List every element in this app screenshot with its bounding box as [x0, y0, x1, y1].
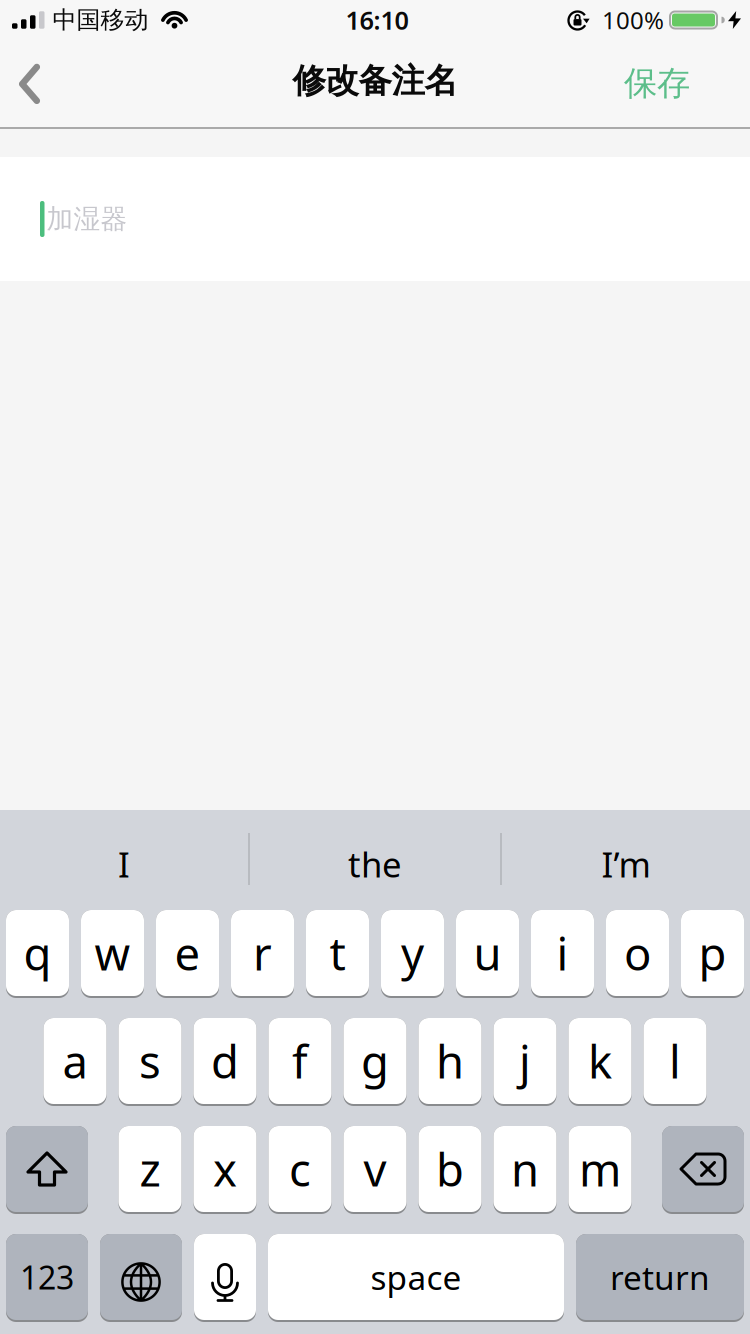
button[interactable]	[100, 1234, 182, 1322]
staticText: g	[361, 1031, 389, 1091]
button[interactable]: y	[381, 910, 444, 998]
staticText: v	[363, 1139, 386, 1199]
button[interactable]: l	[643, 1018, 706, 1106]
button[interactable]: z	[118, 1126, 181, 1214]
button[interactable]: the	[250, 810, 500, 908]
button[interactable]: 加湿器	[0, 157, 750, 281]
button[interactable]: n	[493, 1126, 556, 1214]
staticText: k	[588, 1031, 612, 1091]
staticText: u	[473, 923, 501, 983]
button[interactable]: return	[576, 1234, 744, 1322]
staticText: e	[174, 923, 200, 983]
button[interactable]	[6, 1126, 88, 1214]
button[interactable]: k	[568, 1018, 631, 1106]
staticText: j	[519, 1031, 531, 1091]
button[interactable]: space	[268, 1234, 564, 1322]
button[interactable]: c	[268, 1126, 331, 1214]
staticText: the	[348, 841, 402, 887]
staticText: 123	[20, 1256, 74, 1298]
staticText: t	[329, 923, 345, 983]
button[interactable]: h	[418, 1018, 481, 1106]
staticText: I’m	[601, 841, 650, 887]
button[interactable]: o	[606, 910, 669, 998]
staticText: z	[139, 1139, 160, 1199]
staticText: s	[139, 1031, 161, 1091]
staticText: f	[292, 1031, 308, 1091]
button[interactable]: i	[531, 910, 594, 998]
button[interactable]: u	[456, 910, 519, 998]
button[interactable]: x	[193, 1126, 256, 1214]
staticText: r	[253, 923, 272, 983]
button[interactable]: w	[81, 910, 144, 998]
staticText: l	[669, 1031, 681, 1091]
staticText: x	[213, 1139, 237, 1199]
button[interactable]: q	[6, 910, 69, 998]
staticText: 16:10	[345, 3, 408, 37]
staticText: 加湿器	[46, 203, 127, 235]
button[interactable]	[194, 1234, 256, 1322]
button[interactable]: I’m	[502, 810, 750, 908]
button[interactable]: b	[418, 1126, 481, 1214]
staticText: h	[436, 1031, 464, 1091]
button[interactable]: v	[343, 1126, 406, 1214]
button[interactable]	[662, 1126, 744, 1214]
staticText: 中国移动	[52, 5, 148, 35]
staticText: q	[23, 923, 51, 983]
button[interactable]: 保存	[624, 63, 750, 104]
button[interactable]: a	[43, 1018, 106, 1106]
button[interactable]	[0, 53, 52, 113]
staticText: i	[556, 923, 568, 983]
staticText: a	[62, 1031, 87, 1091]
staticText: d	[211, 1031, 239, 1091]
staticText: n	[511, 1139, 539, 1199]
staticText: o	[624, 923, 651, 983]
staticText: 保存	[624, 63, 690, 104]
button[interactable]: f	[268, 1018, 331, 1106]
staticText: 修改备注名	[292, 60, 457, 101]
staticText: space	[370, 1255, 461, 1299]
button[interactable]: s	[118, 1018, 181, 1106]
button[interactable]: m	[568, 1126, 631, 1214]
staticText: 100%	[602, 4, 664, 36]
button[interactable]: r	[231, 910, 294, 998]
staticText: c	[289, 1139, 311, 1199]
staticText: y	[401, 923, 424, 983]
staticText: return	[610, 1255, 710, 1299]
staticText: w	[94, 923, 130, 983]
staticText: p	[698, 923, 726, 983]
button[interactable]: d	[193, 1018, 256, 1106]
button[interactable]: g	[343, 1018, 406, 1106]
button[interactable]: j	[493, 1018, 556, 1106]
staticText: b	[436, 1139, 464, 1199]
button[interactable]: 123	[6, 1234, 88, 1322]
staticText: m	[579, 1139, 621, 1199]
button[interactable]: I	[0, 810, 248, 908]
button[interactable]: p	[681, 910, 744, 998]
button[interactable]: e	[156, 910, 219, 998]
button[interactable]: t	[306, 910, 369, 998]
staticText: I	[118, 841, 130, 887]
